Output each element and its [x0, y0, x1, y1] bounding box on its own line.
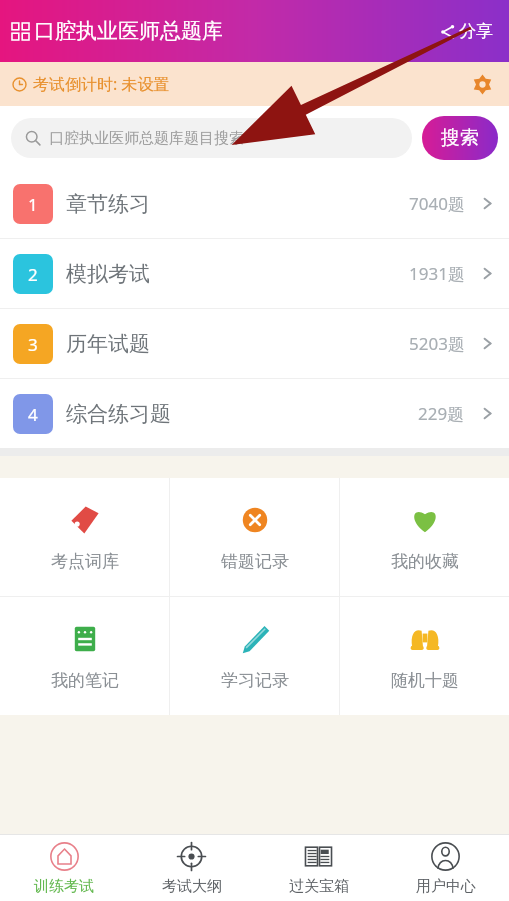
staticText: 7040题 [409, 192, 465, 215]
button[interactable]: 学习记录 [170, 597, 339, 715]
staticText: 错题记录 [221, 551, 289, 572]
button[interactable]: 我的笔记 [0, 597, 169, 715]
button[interactable]: 2 [0, 239, 509, 308]
button[interactable]: 我的收藏 [340, 478, 509, 596]
staticText: 随机十题 [391, 670, 459, 691]
staticText: 考试大纲 [162, 877, 222, 896]
staticText: 1 [28, 193, 38, 216]
staticText: 口腔执业医师总题库题目搜索 [49, 129, 244, 148]
staticText: 4 [28, 403, 38, 426]
staticText: 1931题 [409, 262, 465, 285]
button[interactable]: 过关宝箱 [255, 835, 382, 901]
button[interactable]: 设置 [467, 69, 497, 99]
button[interactable]: 3 [0, 309, 509, 378]
button[interactable]: 随机十题 [340, 597, 509, 715]
button[interactable]: 用户中心 [382, 835, 509, 901]
staticText: 我的收藏 [391, 551, 459, 572]
staticText: 综合练习题 [66, 401, 171, 427]
staticText: 分享 [459, 21, 493, 42]
staticText: 章节练习 [66, 191, 150, 217]
button[interactable]: 错题记录 [170, 478, 339, 596]
button[interactable]: 考点词库 [0, 478, 169, 596]
button[interactable]: 搜索 [422, 116, 498, 160]
button[interactable]: 训练考试 [0, 835, 128, 901]
staticText: 学习记录 [221, 670, 289, 691]
staticText: 口腔执业医师总题库 [34, 18, 223, 44]
staticText: 历年试题 [66, 331, 150, 357]
button[interactable]: 分享 [436, 15, 497, 48]
staticText: 搜索 [441, 126, 479, 150]
staticText: 我的笔记 [51, 670, 119, 691]
staticText: 3 [28, 333, 38, 356]
staticText: 训练考试 [34, 877, 94, 896]
staticText: 用户中心 [416, 877, 476, 896]
staticText: 考点词库 [51, 551, 119, 572]
staticText: 过关宝箱 [289, 877, 349, 896]
staticText: 229题 [418, 402, 465, 425]
button[interactable]: 口腔执业医师总题库题目搜索 [11, 118, 412, 158]
button[interactable]: 1 [0, 169, 509, 238]
staticText: 2 [28, 263, 38, 286]
button[interactable]: 考试大纲 [128, 835, 255, 901]
staticText: 考试倒计时: 未设置 [33, 73, 170, 95]
button[interactable]: 4 [0, 379, 509, 448]
staticText: 5203题 [409, 332, 465, 355]
staticText: 模拟考试 [66, 261, 150, 287]
